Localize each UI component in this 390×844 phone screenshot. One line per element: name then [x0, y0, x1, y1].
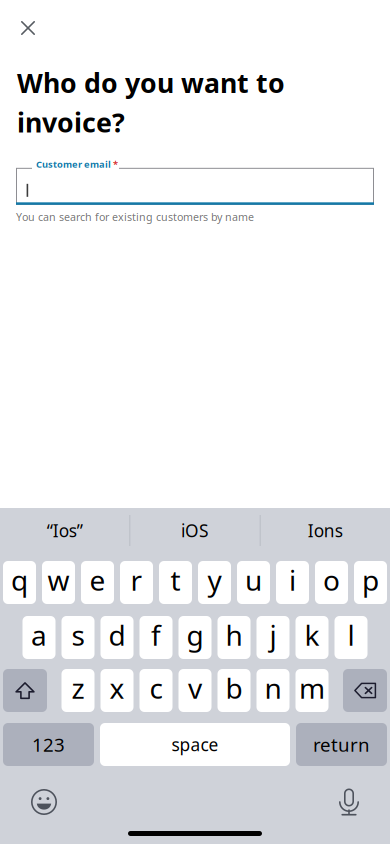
button[interactable]: a [22, 616, 55, 659]
staticText: m [299, 669, 325, 707]
button[interactable]: Ions [261, 508, 390, 553]
staticText: Ions [308, 519, 343, 542]
button[interactable]: Delete [343, 669, 387, 712]
button[interactable]: s [61, 616, 94, 659]
button[interactable]: r [120, 561, 153, 604]
button[interactable]: n [256, 669, 289, 712]
staticText: q [11, 561, 28, 599]
staticText: f [151, 616, 161, 654]
button[interactable]: w [42, 561, 75, 604]
staticText: * [113, 158, 118, 170]
button[interactable]: 123 [3, 723, 94, 766]
button[interactable]: m [295, 669, 328, 712]
button[interactable]: g [178, 616, 211, 659]
button[interactable]: Close [6, 6, 50, 50]
button[interactable]: x [100, 669, 133, 712]
staticText: b [225, 669, 242, 707]
staticText: You can search for existing customers by… [16, 210, 254, 224]
button[interactable]: o [315, 561, 348, 604]
button[interactable]: Dictation [327, 785, 371, 819]
staticText: o [323, 561, 340, 599]
button[interactable]: v [178, 669, 211, 712]
staticText: x [109, 669, 124, 707]
button[interactable]: j [256, 616, 289, 659]
button[interactable]: Emoji [22, 785, 66, 819]
button[interactable]: y [198, 561, 231, 604]
staticText: c [149, 669, 162, 707]
button[interactable]: c [139, 669, 172, 712]
staticText: w [47, 561, 69, 599]
staticText: iOS [181, 519, 209, 542]
button[interactable]: b [217, 669, 250, 712]
button[interactable]: z [61, 669, 94, 712]
button[interactable]: return [296, 723, 387, 766]
button[interactable]: “Ios” [0, 508, 129, 553]
staticText: h [225, 616, 242, 654]
button[interactable]: p [354, 561, 387, 604]
button[interactable]: e [81, 561, 114, 604]
button[interactable]: h [217, 616, 250, 659]
button[interactable]: d [100, 616, 133, 659]
button[interactable]: iOS [130, 508, 260, 553]
staticText: t [170, 561, 180, 599]
button[interactable]: i [276, 561, 309, 604]
staticText: j [269, 616, 276, 654]
button[interactable]: u [237, 561, 270, 604]
staticText: r [130, 561, 142, 599]
staticText: s [71, 616, 84, 654]
button[interactable]: k [295, 616, 328, 659]
button[interactable]: q [3, 561, 36, 604]
staticText: g [186, 616, 203, 654]
staticText: Customer email [36, 158, 111, 170]
staticText: d [108, 616, 125, 654]
staticText: i [289, 561, 296, 599]
staticText: invoice? [17, 104, 125, 140]
staticText: Who do you want to [17, 65, 285, 100]
staticText: return [313, 732, 370, 757]
staticText: 123 [32, 732, 65, 757]
staticText: “Ios” [47, 519, 83, 542]
staticText: n [264, 669, 281, 707]
button[interactable]: l [334, 616, 367, 659]
button[interactable]: space [100, 723, 290, 766]
staticText: p [362, 561, 379, 599]
button[interactable]: f [139, 616, 172, 659]
staticText: a [31, 616, 47, 654]
staticText: u [245, 561, 262, 599]
staticText: e [89, 561, 105, 599]
staticText: z [71, 669, 84, 707]
button[interactable]: t [159, 561, 192, 604]
button[interactable]: Shift [3, 669, 47, 712]
staticText: k [304, 616, 319, 654]
staticText: space [171, 733, 218, 756]
staticText: l [347, 616, 354, 654]
staticText: y [207, 561, 221, 599]
staticText: v [188, 669, 202, 707]
